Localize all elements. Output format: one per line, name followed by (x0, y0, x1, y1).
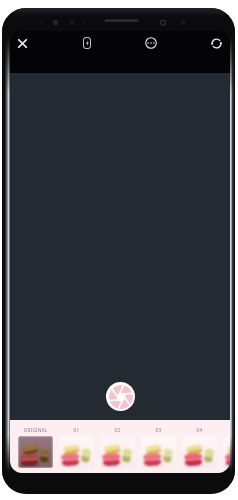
button[interactable]: Switch camera (206, 33, 226, 53)
button[interactable]: 04 (182, 420, 217, 465)
staticText: ORIGINAL (18, 427, 53, 433)
button[interactable]: 03 (141, 420, 176, 465)
button[interactable]: 05 (223, 420, 230, 465)
staticText: 02 (100, 427, 135, 433)
staticText: 01 (59, 427, 94, 433)
staticText: 04 (182, 427, 217, 433)
button[interactable]: ORIGINAL (18, 420, 53, 465)
button[interactable]: Close (12, 33, 32, 53)
button[interactable]: 02 (100, 420, 135, 465)
button[interactable]: Take photo (106, 382, 135, 411)
button[interactable]: More options (141, 33, 161, 53)
staticText: 03 (141, 427, 176, 433)
button[interactable]: Flash (77, 33, 97, 53)
button[interactable]: 01 (59, 420, 94, 465)
